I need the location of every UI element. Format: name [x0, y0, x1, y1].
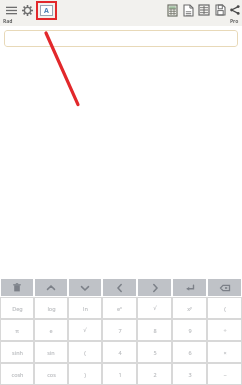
- staticText: −: [223, 371, 227, 378]
- staticText: (: [224, 305, 226, 312]
- staticText: ×: [223, 349, 227, 356]
- staticText: 5: [153, 349, 157, 356]
- staticText: cos: [47, 371, 56, 378]
- button[interactable]: 3: [172, 363, 207, 385]
- staticText: e: [49, 327, 53, 334]
- staticText: ln: [83, 305, 88, 312]
- staticText: eˣ: [117, 305, 122, 312]
- button[interactable]: cosh: [0, 363, 34, 385]
- button[interactable]: 2: [137, 363, 172, 385]
- button[interactable]: π: [0, 319, 34, 341]
- button[interactable]: Menu: [3, 0, 19, 20]
- staticText: 8: [153, 327, 157, 334]
- staticText: π: [15, 327, 19, 334]
- button[interactable]: (: [68, 341, 102, 363]
- button[interactable]: Up: [35, 279, 67, 296]
- button[interactable]: 8: [137, 319, 172, 341]
- button[interactable]: sinh: [0, 341, 34, 363]
- button[interactable]: Calculator: [164, 0, 180, 20]
- button[interactable]: Deg: [0, 297, 34, 319]
- button[interactable]: √: [137, 297, 172, 319]
- staticText: 4: [118, 349, 122, 356]
- button[interactable]: 9: [172, 319, 207, 341]
- staticText: ): [84, 371, 86, 378]
- button[interactable]: Right: [138, 279, 171, 296]
- button[interactable]: 6: [172, 341, 207, 363]
- staticText: 2: [153, 371, 157, 378]
- button[interactable]: [4, 30, 238, 47]
- staticText: 1: [118, 371, 122, 378]
- button[interactable]: Settings: [19, 0, 35, 20]
- button[interactable]: sin: [34, 341, 68, 363]
- button[interactable]: Table: [196, 0, 212, 20]
- button[interactable]: Clear: [1, 279, 33, 296]
- button[interactable]: (: [207, 297, 242, 319]
- button[interactable]: xʸ: [172, 297, 207, 319]
- staticText: Pro: [230, 18, 239, 25]
- button[interactable]: log: [34, 297, 68, 319]
- button[interactable]: New document: [180, 0, 196, 20]
- button[interactable]: e: [34, 319, 68, 341]
- button[interactable]: ÷: [207, 319, 242, 341]
- button[interactable]: ln: [68, 297, 102, 319]
- button[interactable]: −: [207, 363, 242, 385]
- staticText: cosh: [11, 371, 24, 378]
- staticText: 6: [188, 349, 192, 356]
- button[interactable]: 1: [102, 363, 137, 385]
- button[interactable]: √: [68, 319, 102, 341]
- button[interactable]: Share: [228, 0, 242, 20]
- button[interactable]: Save: [212, 0, 228, 20]
- staticText: A: [44, 6, 49, 16]
- staticText: sin: [47, 349, 55, 356]
- staticText: Rad: [3, 18, 13, 25]
- button[interactable]: 4: [102, 341, 137, 363]
- staticText: ÷: [223, 327, 227, 334]
- staticText: 7: [118, 327, 122, 334]
- staticText: sinh: [12, 349, 23, 356]
- staticText: √: [83, 327, 87, 333]
- button[interactable]: eˣ: [102, 297, 137, 319]
- staticText: (: [84, 349, 86, 356]
- staticText: Deg: [12, 305, 23, 312]
- button[interactable]: cos: [34, 363, 68, 385]
- button[interactable]: Backspace: [208, 279, 241, 296]
- button[interactable]: 7: [102, 319, 137, 341]
- staticText: 9: [188, 327, 192, 334]
- button[interactable]: ×: [207, 341, 242, 363]
- button[interactable]: Left: [103, 279, 136, 296]
- button[interactable]: Down: [69, 279, 101, 296]
- staticText: log: [47, 305, 56, 312]
- button[interactable]: 5: [137, 341, 172, 363]
- staticText: √: [153, 305, 157, 311]
- staticText: xʸ: [187, 305, 192, 312]
- button[interactable]: Enter: [173, 279, 206, 296]
- button[interactable]: ): [68, 363, 102, 385]
- button[interactable]: Function: [36, 1, 57, 20]
- staticText: 3: [188, 371, 192, 378]
